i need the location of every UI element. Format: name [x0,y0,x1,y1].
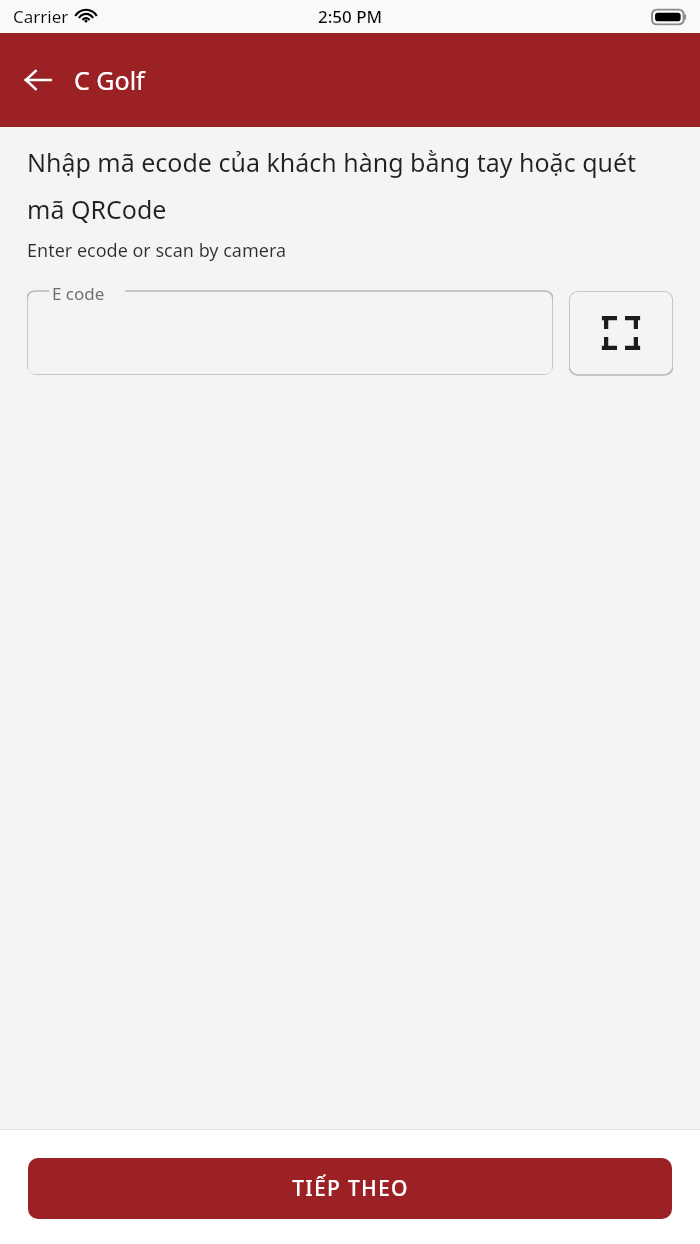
staticText: Nhập mã ecode của khách hàng bằng tay ho… [27,145,670,226]
staticText: 2:50 PM [318,5,383,28]
staticText: E code [52,283,105,305]
button[interactable]: TIẾP THEO [28,1158,672,1219]
staticText: Carrier [13,5,69,28]
staticText: Enter ecode or scan by camera [27,238,287,263]
button[interactable]: Scan QR code [569,291,673,383]
staticText: TIẾP THEO [292,1174,409,1203]
button[interactable]: E code [27,283,553,375]
button[interactable]: Back [14,56,62,104]
staticText: C Golf [74,63,145,97]
